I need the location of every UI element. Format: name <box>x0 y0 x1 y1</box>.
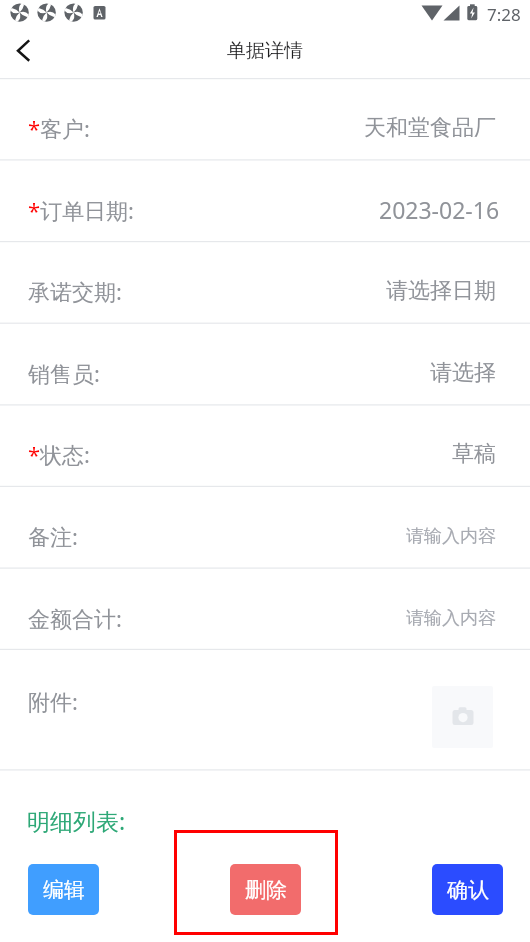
staticText: 附件: <box>28 686 78 716</box>
staticText: 明细列表: <box>27 805 126 836</box>
button[interactable]: 编辑 <box>28 864 99 915</box>
staticText: 草稿 <box>452 440 496 468</box>
button[interactable]: *状态: <box>0 404 530 486</box>
button[interactable]: *订单日期: <box>0 159 530 241</box>
staticText: 7:28 <box>487 3 521 26</box>
staticText: 请输入内容 <box>406 525 496 548</box>
staticText: 请选择日期 <box>386 277 496 305</box>
staticText: 销售员: <box>28 358 100 388</box>
staticText: 备注: <box>28 521 78 551</box>
staticText: 请选择 <box>430 359 496 387</box>
button[interactable]: 销售员: <box>0 323 530 405</box>
button[interactable]: 确认 <box>432 864 503 915</box>
button[interactable]: 备注: <box>0 486 530 568</box>
button[interactable]: *客户: <box>0 78 530 159</box>
staticText: *状态: <box>28 439 91 469</box>
staticText: 承诺交期: <box>28 276 122 306</box>
button[interactable]: Back <box>4 31 46 73</box>
staticText: 单据详情 <box>227 39 303 63</box>
button[interactable]: Add photo <box>432 686 493 748</box>
staticText: 请输入内容 <box>406 607 496 630</box>
staticText: 确认 <box>447 877 489 903</box>
staticText: 删除 <box>245 877 287 903</box>
button[interactable]: 承诺交期: <box>0 241 530 323</box>
button[interactable]: 金额合计: <box>0 568 530 649</box>
staticText: 编辑 <box>43 877 85 903</box>
staticText: 金额合计: <box>28 603 122 633</box>
button[interactable]: 删除 <box>230 864 301 915</box>
staticText: 天和堂食品厂 <box>364 114 496 142</box>
staticText: 2023-02-16 <box>379 194 500 225</box>
staticText: *客户: <box>28 113 91 143</box>
staticText: *订单日期: <box>28 195 135 225</box>
